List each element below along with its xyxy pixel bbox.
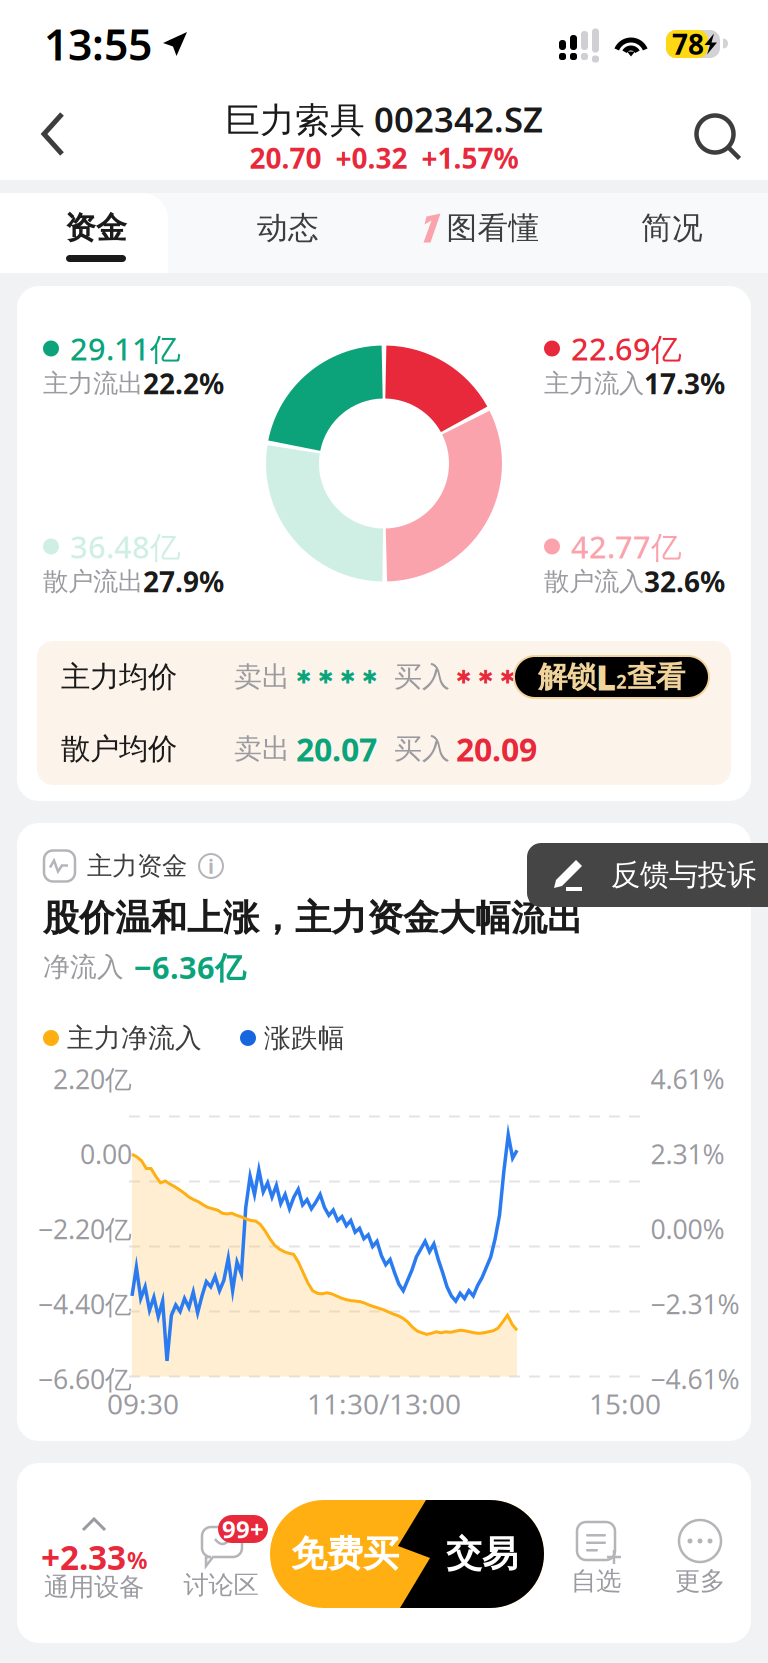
staticText: 净流入 — [43, 951, 124, 983]
staticText: −4.40亿 — [38, 1286, 132, 1322]
staticText: 讨论区 — [183, 1569, 258, 1600]
staticText: 通用设备 — [44, 1571, 144, 1602]
staticText: i — [208, 853, 214, 879]
button[interactable]: 自选 — [544, 1491, 648, 1617]
staticText: 11:30/13:00 — [307, 1385, 461, 1422]
staticText: 2.31% — [650, 1136, 724, 1172]
staticText: +1.57% — [421, 139, 518, 177]
staticText: 股价温和上涨，主力资金大幅流出 — [43, 896, 583, 940]
staticText: 22.69亿 — [571, 328, 682, 369]
staticText: 主力均价 — [61, 659, 177, 695]
staticText: 图看懂 — [446, 209, 539, 247]
staticText: 4.61% — [650, 1061, 724, 1097]
staticText: 买入 — [394, 660, 450, 694]
button[interactable]: 搜索 — [672, 88, 758, 180]
staticText: 反馈与投诉 — [611, 857, 756, 893]
button[interactable]: 图看懂 — [384, 193, 576, 273]
staticText: 动态 — [257, 209, 319, 247]
staticText: 主力净流入 — [67, 1022, 202, 1054]
staticText: 0.00 — [80, 1136, 132, 1172]
button[interactable]: 更多 — [648, 1491, 752, 1617]
staticText: 卖出 — [234, 732, 290, 766]
staticText: −2.20亿 — [38, 1211, 132, 1247]
staticText: 涨跌幅 — [264, 1022, 345, 1054]
button[interactable]: 99+ — [172, 1491, 270, 1617]
staticText: 15:00 — [589, 1385, 661, 1422]
staticText: 20.70 — [249, 139, 321, 177]
staticText: ✱ ✱ ✱ ✱ — [296, 666, 378, 688]
button[interactable]: +2.33 — [16, 1491, 172, 1617]
staticText: 20.09 — [456, 728, 537, 770]
staticText: 27.9% — [143, 563, 224, 600]
staticText: 买入 — [394, 732, 450, 766]
staticText: 主力资金 — [87, 850, 187, 881]
staticText: % — [127, 1545, 147, 1575]
staticText: 99+ — [222, 1513, 264, 1545]
button[interactable]: 简况 — [576, 193, 768, 273]
staticText: ✱ ✱ ✱ ✱ — [456, 666, 538, 688]
staticText: 主力流入 — [544, 368, 644, 399]
staticText: 散户流入 — [544, 566, 644, 597]
staticText: 22.2% — [143, 365, 224, 402]
button[interactable]: 解锁 — [514, 656, 709, 698]
staticText: +0.32 — [335, 139, 407, 177]
staticText: 36.48亿 — [70, 526, 181, 567]
staticText: L — [596, 654, 616, 700]
staticText: 17.3% — [644, 365, 725, 402]
staticText: 32.6% — [644, 563, 725, 600]
staticText: 查看 — [627, 659, 685, 695]
staticText: 免费买 — [291, 1532, 399, 1576]
staticText: 资金 — [65, 209, 127, 247]
staticText: 简况 — [641, 209, 703, 247]
staticText: +2.33 — [41, 1535, 126, 1579]
staticText: 散户均价 — [61, 731, 177, 767]
staticText: 0.00% — [650, 1211, 724, 1247]
staticText: 交易 — [446, 1532, 518, 1576]
staticText: 2.20亿 — [53, 1061, 132, 1097]
staticText: −4.61% — [650, 1361, 739, 1397]
staticText: 42.77亿 — [571, 526, 682, 567]
staticText: 29.11亿 — [70, 328, 181, 369]
button[interactable]: 资金 — [0, 193, 192, 273]
staticText: −2.31% — [650, 1286, 739, 1322]
button[interactable]: 反馈与投诉 — [527, 843, 768, 907]
staticText: −6.60亿 — [38, 1361, 132, 1397]
staticText: 解锁 — [538, 659, 596, 695]
staticText: 更多 — [675, 1565, 725, 1596]
staticText: 巨力索具 002342.SZ — [225, 96, 543, 142]
staticText: 13:55 — [44, 16, 152, 72]
staticText: 散户流出 — [43, 566, 143, 597]
button[interactable]: 返回 — [10, 88, 96, 180]
staticText: 主力流出 — [43, 368, 143, 399]
button[interactable]: 动态 — [192, 193, 384, 273]
staticText: 2 — [616, 669, 627, 694]
staticText: 09:30 — [107, 1385, 179, 1422]
button[interactable]: 免费买 — [270, 1500, 544, 1608]
staticText: −6.36亿 — [134, 947, 246, 987]
staticText: 自选 — [571, 1565, 621, 1596]
staticText: 卖出 — [234, 660, 290, 694]
staticText: 20.07 — [296, 728, 377, 770]
staticText: 78 — [672, 25, 704, 63]
